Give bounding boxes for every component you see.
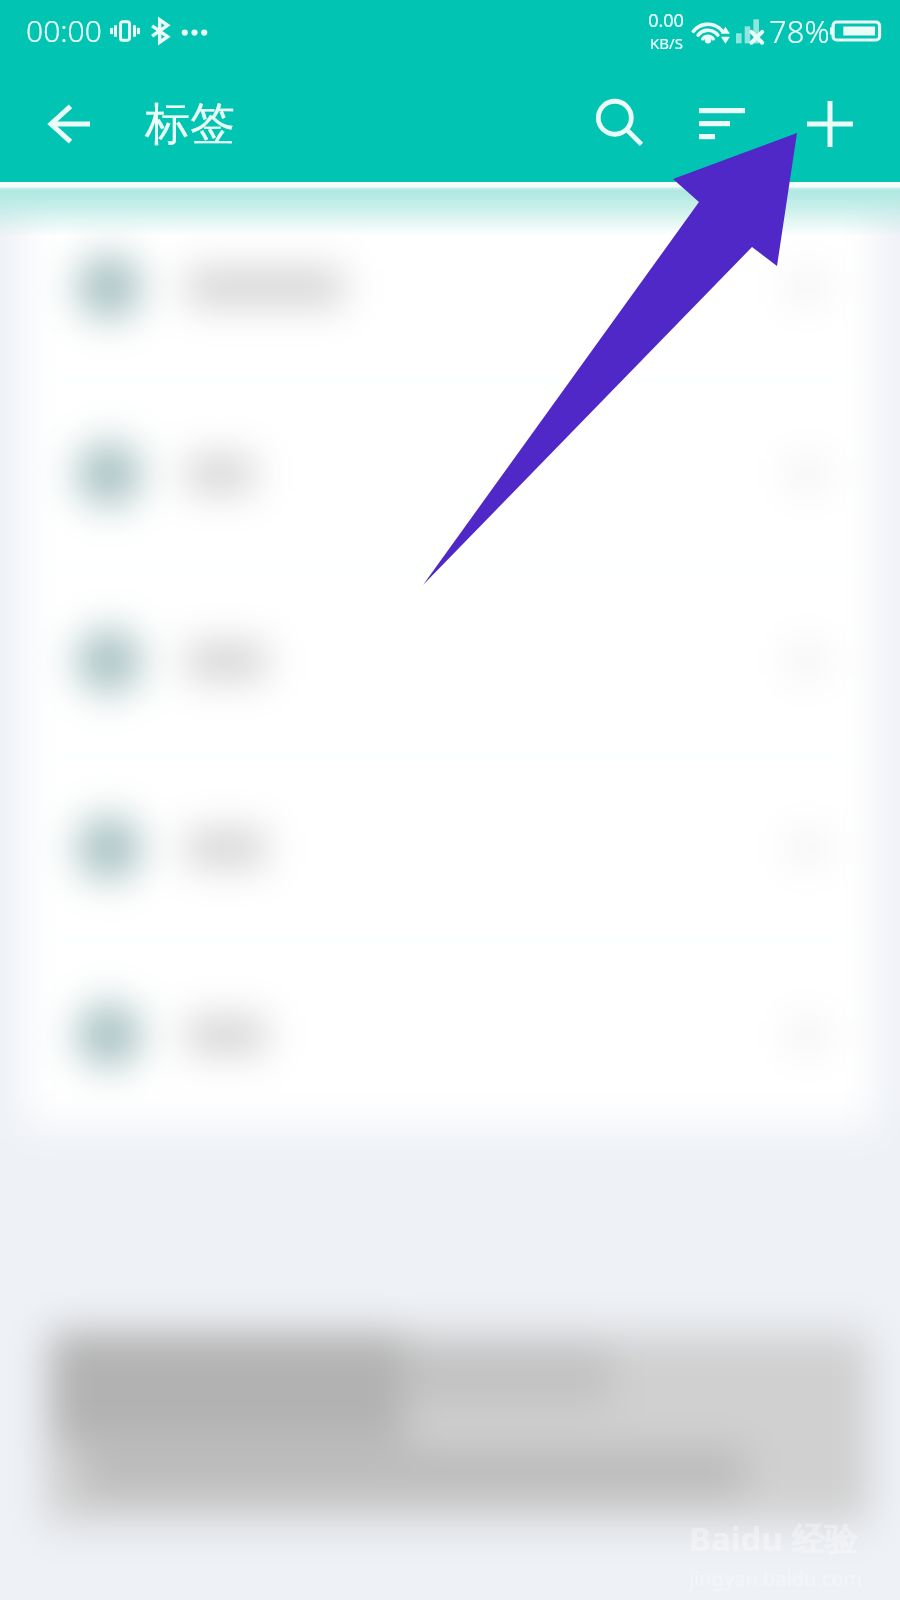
button[interactable]: Add [782, 69, 878, 179]
button[interactable]: Back [22, 69, 118, 179]
button[interactable] [24, 757, 876, 939]
staticText: Baidu 经验 [689, 1516, 858, 1561]
staticText: KB/S [650, 33, 683, 53]
button[interactable] [24, 944, 876, 1126]
button[interactable] [24, 570, 876, 752]
button[interactable] [24, 383, 876, 565]
staticText: 00:00 [26, 10, 102, 51]
staticText: 标签 [145, 96, 235, 153]
staticText: 0.00 [648, 8, 684, 33]
button[interactable]: Sort [677, 69, 773, 179]
button[interactable]: Search [572, 69, 668, 179]
button[interactable] [24, 196, 876, 378]
staticText: 78% [769, 10, 830, 52]
